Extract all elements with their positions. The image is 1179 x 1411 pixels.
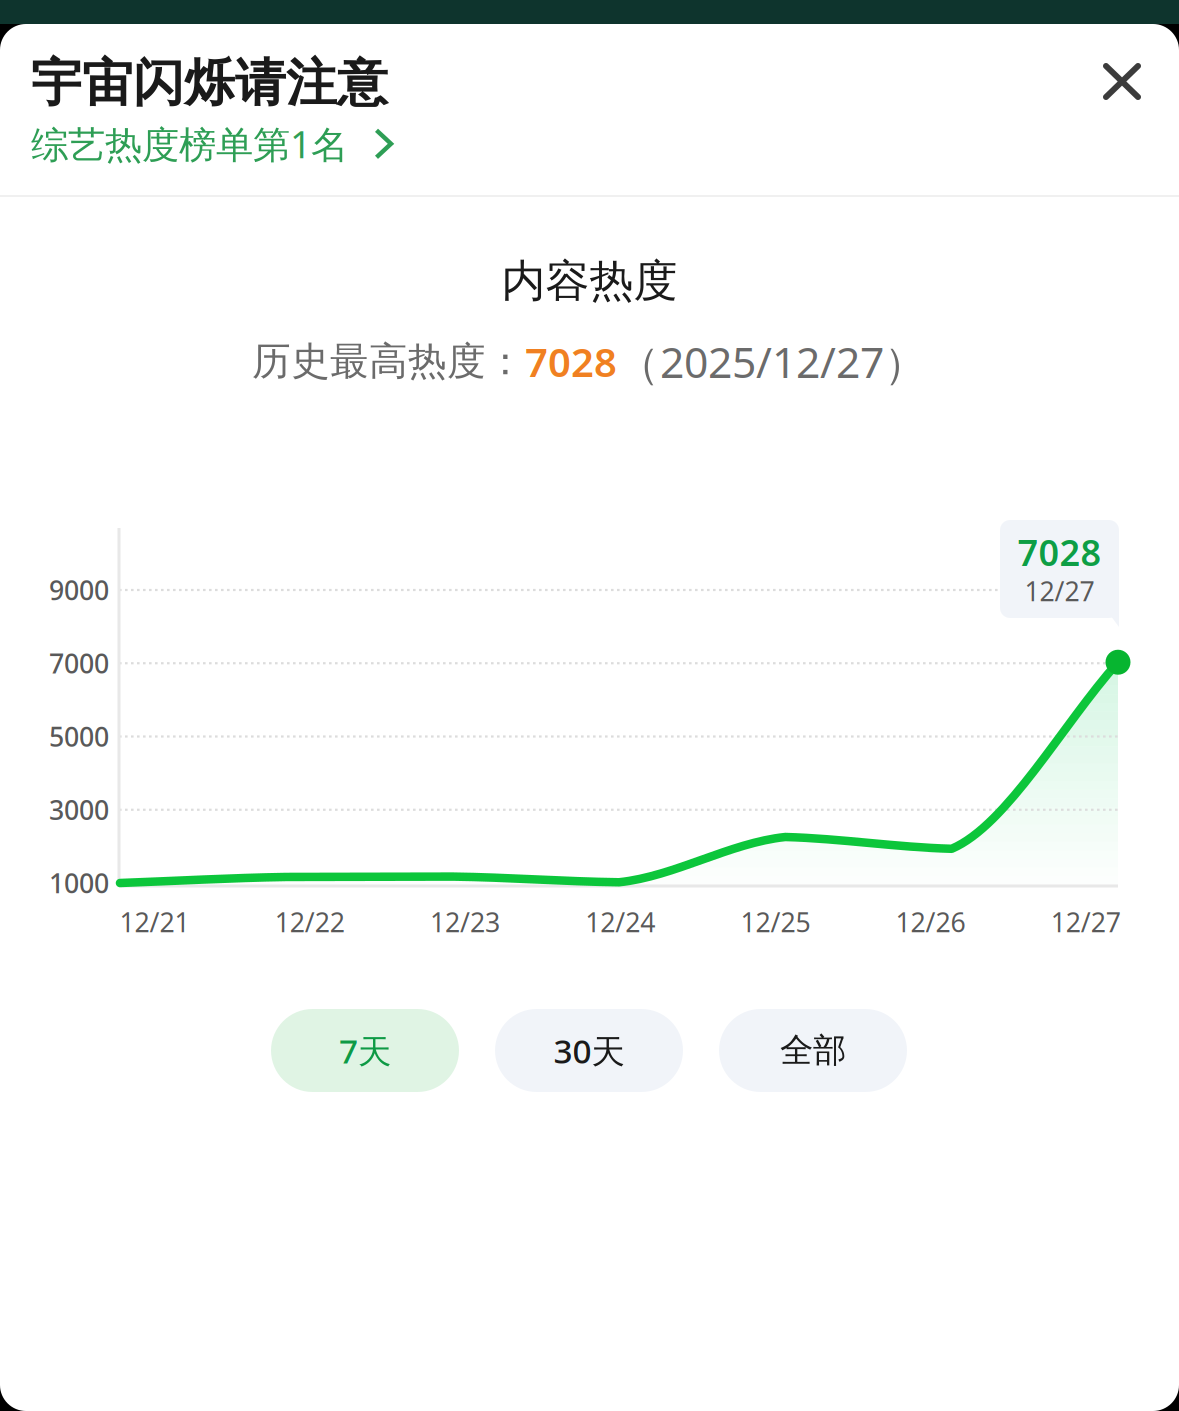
staticText: 12/27 (1051, 904, 1121, 940)
staticText: 12/26 (896, 904, 966, 940)
staticText: 5000 (49, 719, 109, 754)
button[interactable]: 30天 (495, 1009, 683, 1092)
staticText: 7000 (49, 646, 109, 681)
staticText: （2025/12/27） (617, 333, 927, 390)
staticText: 综艺热度榜单第1名 (31, 119, 348, 169)
staticText: 历史最高热度： (252, 338, 525, 385)
staticText: 宇宙闪烁请注意 (31, 52, 388, 114)
staticText: 全部 (780, 1030, 846, 1071)
staticText: 1000 (49, 865, 109, 901)
staticText: 12/23 (430, 904, 500, 940)
button[interactable]: 综艺热度榜单第1名 (31, 114, 394, 174)
staticText: 9000 (49, 572, 109, 608)
staticText: 内容热度 (501, 254, 677, 308)
staticText: 12/27 (1024, 573, 1094, 609)
button[interactable]: 全部 (719, 1009, 907, 1092)
staticText: 7028 (525, 335, 617, 388)
staticText: 30天 (553, 1028, 624, 1073)
button[interactable]: 7天 (271, 1009, 459, 1092)
staticText: 12/22 (275, 904, 345, 940)
staticText: 12/25 (740, 904, 810, 940)
staticText: 7天 (339, 1028, 391, 1073)
staticText: 12/24 (585, 904, 655, 940)
staticText: 12/21 (120, 904, 190, 940)
staticText: 7028 (1017, 528, 1101, 576)
button[interactable]: Close (1082, 42, 1162, 121)
staticText: 3000 (49, 792, 109, 827)
